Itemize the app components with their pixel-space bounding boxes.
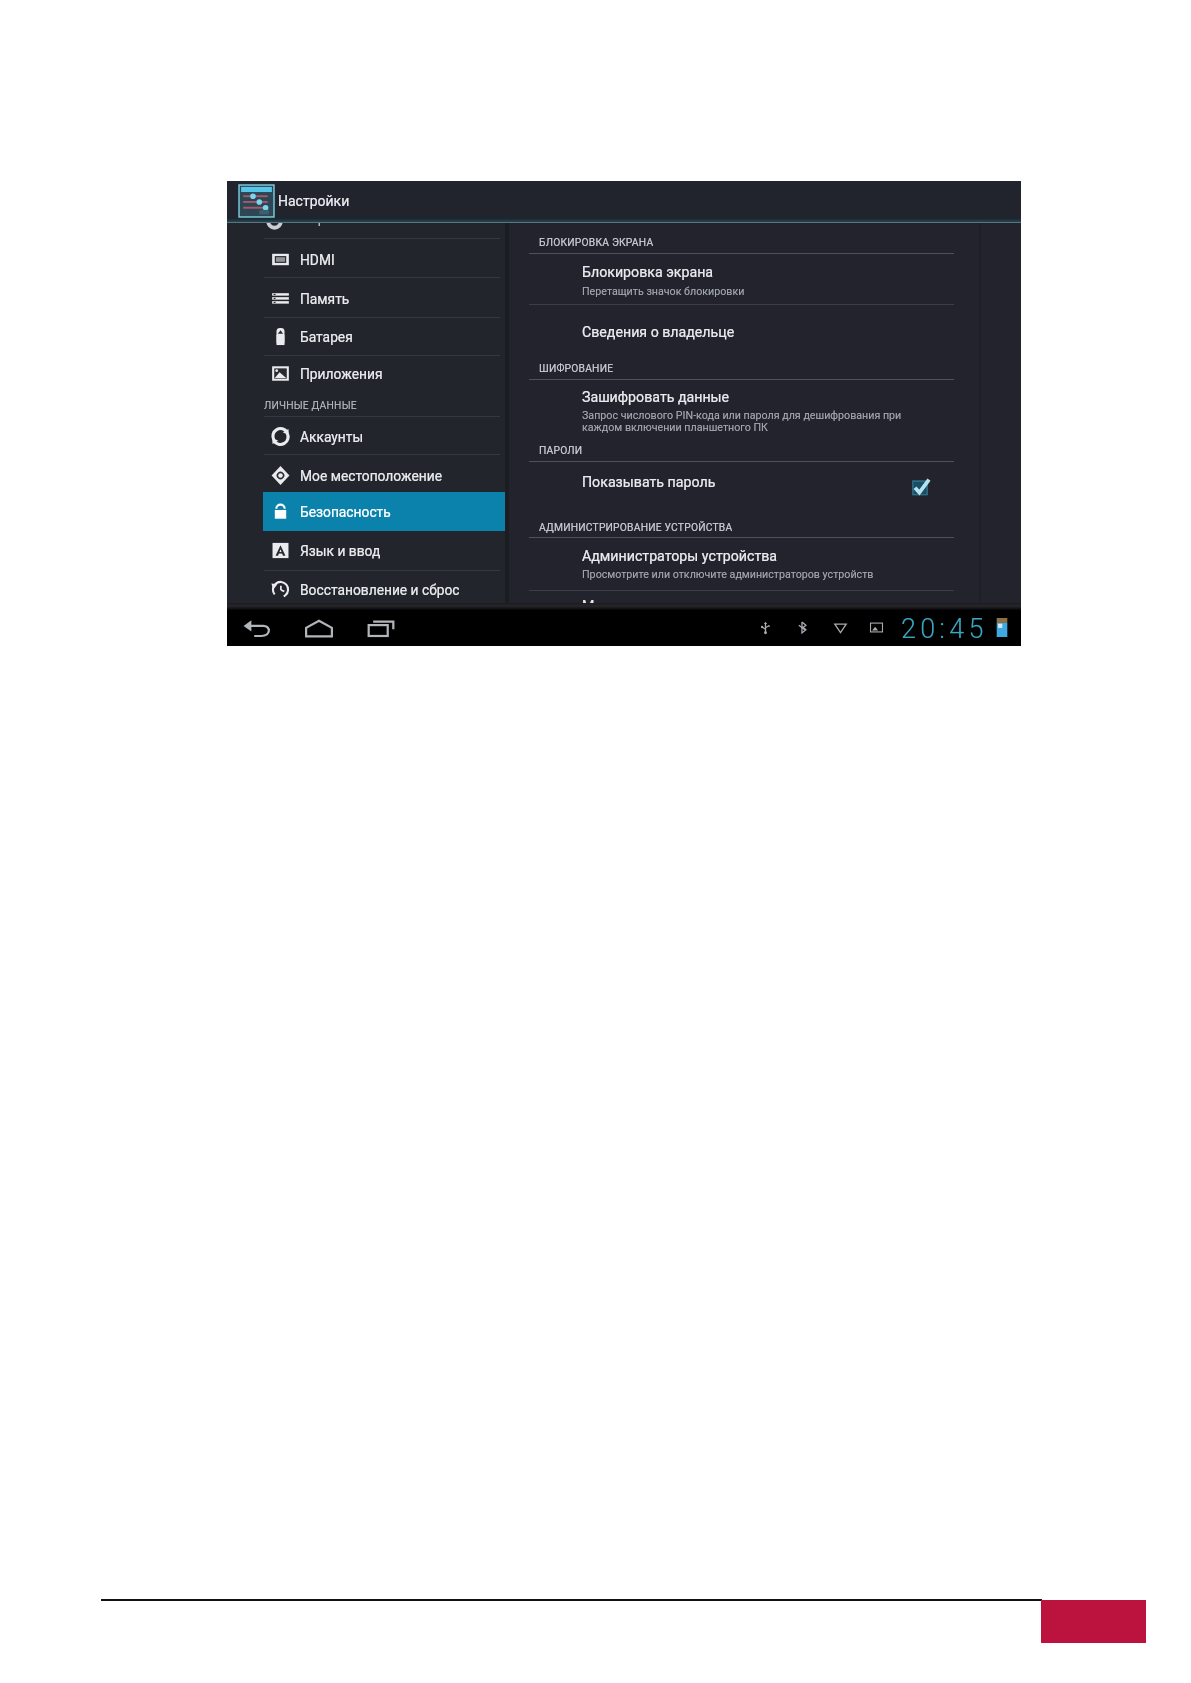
staticText: Приложения	[300, 366, 383, 382]
button[interactable]: Показывать пароль	[582, 474, 716, 491]
staticText: Язык и ввод	[300, 543, 381, 559]
staticText: Запрос числового PIN-кода или пароля для…	[582, 409, 902, 422]
button[interactable]: Мое местоположение	[263, 456, 505, 495]
staticText: Настройки	[278, 193, 350, 209]
button[interactable]: Батарея	[263, 317, 505, 356]
staticText: БЛОКИРОВКА ЭКРАНА	[539, 236, 654, 248]
button[interactable]: Память	[263, 279, 505, 318]
staticText: 20:45	[901, 613, 988, 645]
staticText: каждом включении планшетного ПК	[582, 421, 768, 434]
staticText: ЛИЧНЫЕ ДАННЫЕ	[264, 399, 357, 411]
button[interactable]: Сведения о владельце	[582, 324, 735, 341]
staticText: HDMI	[300, 252, 335, 268]
staticText: Аккаунты	[300, 429, 364, 445]
button[interactable]: Аккаунты	[263, 417, 505, 456]
button[interactable]: Home	[304, 616, 334, 640]
button[interactable]: Восстановление и сброс	[263, 570, 505, 603]
button[interactable]: Администраторы устройства	[582, 548, 778, 565]
staticText: Безопасность	[300, 504, 391, 520]
button[interactable]: Recent apps	[366, 616, 396, 640]
button[interactable]	[263, 492, 505, 531]
button[interactable]: Язык и ввод	[263, 531, 505, 570]
button[interactable]: Блокировка экрана	[582, 264, 714, 281]
staticText: Экран	[301, 223, 341, 226]
button[interactable]: Back	[242, 616, 272, 640]
button[interactable]: Приложения	[263, 354, 505, 393]
staticText: Батарея	[300, 329, 353, 345]
staticText: Мое местоположение	[300, 468, 443, 484]
staticText: Восстановление и сброс	[300, 582, 460, 598]
button[interactable]: HDMI	[263, 240, 505, 279]
staticText: ШИФРОВАНИЕ	[539, 362, 614, 374]
staticText: Память	[300, 291, 350, 307]
staticText: Перетащить значок блокировки	[582, 285, 745, 298]
staticText: Просмотрите или отключите администраторо…	[582, 568, 874, 581]
staticText: М	[582, 598, 595, 603]
button[interactable]: Безопасность	[263, 492, 505, 531]
button[interactable]: Показывать пароль	[911, 477, 931, 496]
staticText: АДМИНИСТРИРОВАНИЕ УСТРОЙСТВА	[539, 521, 733, 533]
staticText: ПАРОЛИ	[539, 444, 583, 456]
button[interactable]: Зашифровать данные	[582, 389, 730, 406]
